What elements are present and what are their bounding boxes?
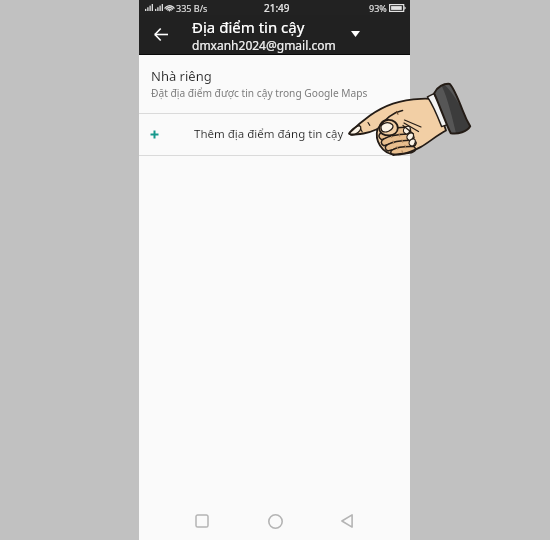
staticText: 21:49 (264, 1, 290, 15)
button[interactable]: Home (257, 503, 293, 539)
staticText: Thêm địa điểm đáng tin cậy (194, 126, 344, 142)
staticText: Nhà riêng (151, 67, 212, 85)
button[interactable]: Nhà riêng (139, 55, 410, 113)
staticText: Địa điểm tin cậy (192, 17, 305, 37)
staticText: 93% (369, 2, 387, 14)
button[interactable]: Back (148, 21, 174, 47)
button[interactable]: Recents (184, 503, 220, 539)
button[interactable]: More options (343, 22, 367, 46)
staticText: dmxanh2024@gmail.com (192, 37, 336, 53)
button[interactable]: Back (329, 503, 365, 539)
staticText: Đặt địa điểm được tin cậy trong Google M… (151, 86, 368, 100)
button[interactable]: Thêm địa điểm đáng tin cậy (139, 114, 410, 155)
staticText: 335 B/s (176, 2, 208, 14)
